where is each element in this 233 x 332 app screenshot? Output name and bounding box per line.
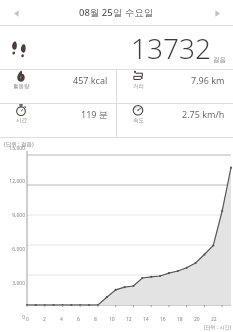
staticText: 시간 <box>16 117 27 124</box>
staticText: 16 <box>160 316 166 323</box>
staticText: 12 <box>126 316 132 323</box>
staticText: 10 <box>109 316 115 323</box>
staticText: 8 <box>94 316 97 323</box>
staticText: 활동량 <box>13 83 30 90</box>
staticText: 2 <box>43 316 46 323</box>
staticText: 2.75 km/h <box>182 108 225 120</box>
staticText: 6,000 <box>12 246 25 253</box>
staticText: 13732 <box>131 29 211 67</box>
staticText: 9,000 <box>12 212 25 219</box>
staticText: 457 kcal <box>73 74 108 86</box>
staticText: 0 <box>26 316 29 323</box>
staticText: 22 <box>211 316 217 323</box>
staticText: 18 <box>177 316 183 323</box>
staticText: 0 <box>22 314 25 321</box>
button[interactable]: 속도 <box>117 104 233 124</box>
staticText: 14 <box>143 316 149 323</box>
staticText: 119 분 <box>81 108 108 120</box>
staticText: 12,000 <box>9 178 25 185</box>
staticText: 6 <box>77 316 80 323</box>
staticText: (단위 : 시간) <box>204 324 231 331</box>
staticText: 15,000 <box>9 145 25 152</box>
button[interactable]: Previous day <box>5 2 27 24</box>
staticText: 20 <box>194 316 200 323</box>
staticText: 4 <box>60 316 63 323</box>
button[interactable]: Next day <box>206 2 228 24</box>
staticText: 걸음 <box>213 56 226 64</box>
button[interactable]: 13732 <box>0 26 233 69</box>
button[interactable]: 시간 <box>0 104 116 124</box>
staticText: 3,000 <box>12 280 25 287</box>
button[interactable]: 활동량 <box>0 70 116 90</box>
staticText: 7.96 km <box>191 74 225 86</box>
staticText: 거리 <box>133 83 144 90</box>
staticText: 속도 <box>133 117 144 124</box>
button[interactable]: 거리 <box>117 70 233 90</box>
staticText: 08월 25일 수요일 <box>79 6 154 19</box>
staticText: (단위 : 걸음) <box>4 140 34 148</box>
